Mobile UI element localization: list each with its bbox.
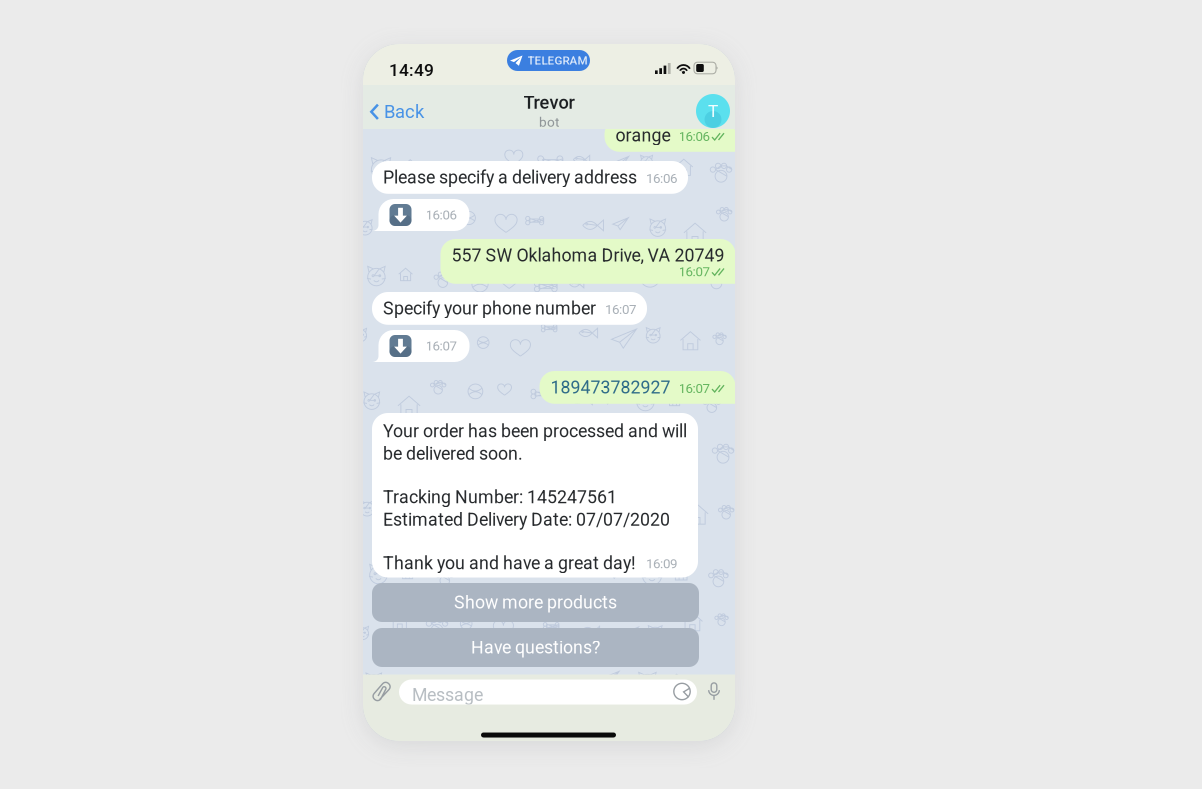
staticText: T: [708, 101, 718, 121]
staticText: 16:07: [678, 264, 709, 280]
staticText: Message: [412, 684, 483, 705]
staticText: 14:49: [389, 60, 434, 80]
staticText: Specify your phone number: [383, 298, 596, 319]
staticText: Back: [384, 101, 424, 123]
staticText: be delivered soon.: [383, 443, 523, 464]
staticText: 16:07: [425, 338, 456, 354]
staticText: Trevor: [523, 92, 574, 113]
button[interactable]: Voice message: [707, 681, 721, 702]
button[interactable]: Attach: [373, 681, 390, 701]
button[interactable]: Back: [363, 93, 431, 131]
staticText: Have questions?: [471, 637, 600, 658]
staticText: 16:07: [678, 381, 709, 396]
staticText: Your order has been processed and will: [383, 421, 687, 442]
staticText: bot: [539, 114, 559, 130]
staticText: Show more products: [454, 592, 617, 613]
staticText: orange: [615, 125, 670, 146]
staticText: TELEGRAM: [527, 54, 587, 67]
staticText: Tracking Number: 145247561: [383, 487, 617, 508]
button[interactable]: Trevor profile: [696, 94, 730, 128]
staticText: 16:09: [646, 556, 677, 571]
staticText: 16:06: [425, 207, 456, 223]
button[interactable]: Show more products: [372, 583, 699, 622]
button[interactable]: Have questions?: [372, 628, 699, 667]
staticText: 16:07: [605, 302, 636, 317]
staticText: 557 SW Oklahoma Drive, VA 20749: [451, 245, 724, 266]
button[interactable]: Stickers: [673, 682, 691, 700]
staticText: 16:06: [678, 129, 709, 144]
staticText: Estimated Delivery Date: 07/07/2020: [383, 509, 670, 530]
staticText: Thank you and have a great day!: [383, 553, 636, 574]
staticText: Please specify a delivery address: [383, 167, 637, 188]
staticText: 16:06: [646, 171, 677, 186]
staticText: 189473782927: [550, 377, 670, 398]
